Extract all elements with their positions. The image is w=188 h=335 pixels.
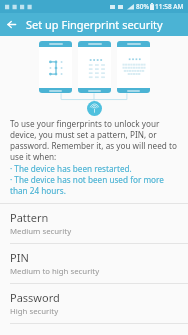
staticText: To use your fingerprints to unlock your …	[10, 118, 178, 162]
button[interactable]: Password	[0, 284, 188, 323]
staticText: 80%	[136, 2, 149, 11]
staticText: 11:58 AM	[155, 2, 184, 11]
staticText: Medium security	[10, 226, 72, 237]
button[interactable]: PIN	[0, 244, 188, 283]
staticText: · The device has been restarted.	[10, 163, 132, 174]
staticText: High security	[10, 306, 59, 317]
staticText: PIN	[10, 250, 29, 265]
staticText: · The device has not been used for more …	[10, 174, 178, 196]
staticText: Set up Fingerprint security	[26, 17, 163, 32]
staticText: Medium to high security	[10, 266, 100, 277]
staticText: Pattern	[10, 210, 49, 225]
staticText: Password	[10, 290, 60, 305]
button[interactable]: Pattern	[0, 204, 188, 243]
button[interactable]: Back	[0, 13, 23, 36]
